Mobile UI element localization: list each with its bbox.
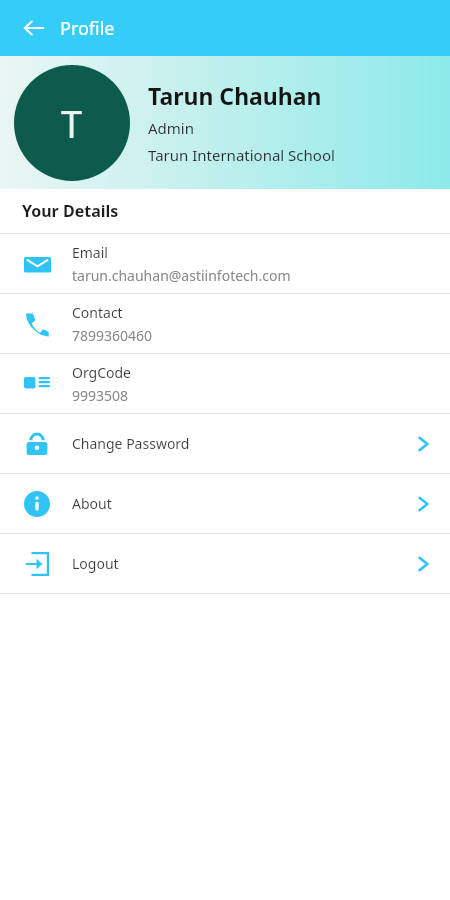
staticText: 9993508 xyxy=(72,386,129,405)
button[interactable]: Back xyxy=(14,8,54,48)
staticText: Contact xyxy=(72,303,123,322)
staticText: Profile xyxy=(60,16,115,41)
staticText: About xyxy=(72,494,112,513)
staticText: Change Password xyxy=(72,434,190,453)
button[interactable]: Change Password xyxy=(0,414,450,473)
staticText: Email xyxy=(72,243,108,262)
button[interactable]: Logout xyxy=(0,534,450,593)
button[interactable]: About xyxy=(0,474,450,533)
button[interactable]: OrgCode xyxy=(0,354,450,413)
staticText: Logout xyxy=(72,554,119,573)
staticText: T xyxy=(61,97,83,149)
staticText: Tarun Chauhan xyxy=(148,80,322,111)
button[interactable]: Email xyxy=(0,234,450,293)
staticText: Your Details xyxy=(22,200,119,222)
staticText: 7899360460 xyxy=(72,326,153,345)
staticText: Admin xyxy=(148,118,194,138)
staticText: OrgCode xyxy=(72,363,132,382)
staticText: Tarun International School xyxy=(148,145,335,165)
button[interactable]: Contact xyxy=(0,294,450,353)
staticText: tarun.chauhan@astiinfotech.com xyxy=(72,266,291,285)
